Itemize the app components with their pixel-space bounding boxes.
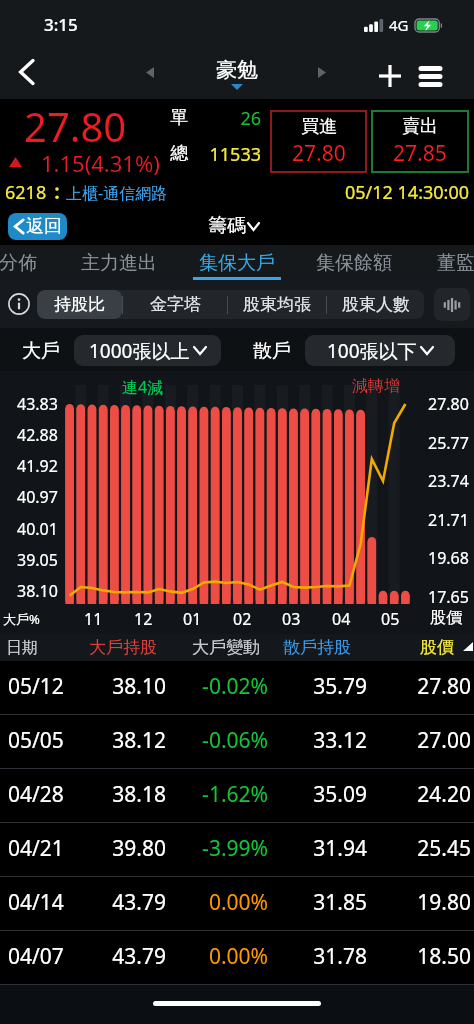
button[interactable]: Menu	[406, 52, 454, 100]
staticText: 27.80	[292, 139, 346, 168]
button[interactable]: Chart indicator	[434, 288, 470, 321]
staticText: 26	[185, 106, 261, 131]
staticText: 01	[183, 608, 202, 630]
button[interactable]: 04/14	[0, 877, 474, 931]
button[interactable]: 04/28	[0, 769, 474, 823]
staticText: 集保大戶	[199, 251, 275, 275]
staticText: 集保餘額	[316, 251, 392, 275]
staticText: 43.83	[17, 393, 58, 415]
button[interactable]: 04/07	[0, 931, 474, 985]
staticText: 03	[282, 608, 301, 630]
button[interactable]: 04/21	[0, 823, 474, 877]
staticText: 18.50	[401, 942, 471, 971]
staticText: 11533	[185, 142, 261, 167]
staticText: 返回	[26, 215, 62, 238]
button[interactable]: 集保大戶	[187, 245, 287, 280]
staticText: 05/12 14:30:00	[345, 180, 469, 205]
staticText: 賣出	[402, 115, 438, 138]
button[interactable]: 買進	[270, 110, 367, 173]
staticText: 股價	[430, 608, 462, 628]
staticText: 27.85	[393, 139, 447, 168]
staticText: 27.00	[401, 726, 471, 755]
staticText: 1000張以上	[89, 338, 190, 364]
staticText: 12	[134, 608, 153, 630]
staticText: -0.06%	[190, 726, 268, 755]
staticText: 100張以下	[327, 338, 417, 364]
staticText: 散戶持股	[283, 637, 351, 658]
button[interactable]: 05/12	[0, 661, 474, 715]
button[interactable]: 股東人數	[327, 290, 424, 319]
button[interactable]: 持股比	[37, 290, 122, 319]
staticText: 39.05	[17, 549, 58, 571]
staticText: 0.00%	[190, 888, 268, 917]
staticText: 05/12	[8, 672, 64, 701]
staticText: 24.20	[401, 780, 471, 809]
staticText: 大戶	[22, 339, 60, 363]
staticText: 02	[233, 608, 252, 630]
staticText: 6218	[5, 180, 47, 205]
staticText: -1.62%	[190, 780, 268, 809]
staticText: 25.77	[428, 432, 469, 454]
staticText: 40.97	[17, 486, 58, 508]
button[interactable]: 集保餘額	[304, 245, 404, 280]
staticText: 11	[84, 608, 103, 630]
staticText: 04/07	[8, 942, 64, 971]
staticText: 豪勉	[216, 57, 258, 83]
staticText: 日期	[6, 638, 38, 658]
staticText: 0.00%	[190, 942, 268, 971]
staticText: 19.68	[428, 547, 469, 569]
staticText: 04/21	[8, 834, 64, 863]
button[interactable]: Previous stock	[133, 55, 167, 89]
staticText: -3.99%	[190, 834, 268, 863]
staticText: 31.94	[300, 834, 367, 863]
button[interactable]: Next stock	[305, 55, 339, 89]
staticText: 減轉增	[352, 376, 400, 396]
staticText: 單	[170, 106, 188, 129]
staticText: 買進	[301, 115, 337, 138]
staticText: 17.65	[428, 586, 469, 608]
button[interactable]: Back	[0, 45, 54, 99]
button[interactable]: Info	[4, 289, 34, 319]
staticText: 21.71	[428, 509, 469, 531]
staticText: 04/14	[8, 888, 64, 917]
staticText: 股東人數	[342, 294, 410, 315]
staticText: 大戶%	[3, 610, 40, 628]
staticText: 43.79	[96, 888, 166, 917]
button[interactable]: 股東均張	[228, 290, 326, 319]
staticText: 31.85	[300, 888, 367, 917]
staticText: 27.80	[24, 99, 127, 153]
button[interactable]: 05/05	[0, 715, 474, 769]
button[interactable]: 100張以下	[305, 335, 455, 366]
staticText: 43.79	[96, 942, 166, 971]
staticText: 04	[332, 608, 351, 630]
staticText: 38.18	[96, 780, 166, 809]
staticText: 35.09	[300, 780, 367, 809]
staticText: -0.02%	[190, 672, 268, 701]
staticText: 40.01	[17, 518, 58, 540]
staticText: 38.10	[17, 580, 58, 602]
staticText: 大戶變動	[192, 637, 260, 658]
staticText: 33.12	[300, 726, 367, 755]
staticText: 股東均張	[243, 294, 311, 315]
staticText: 39.80	[96, 834, 166, 863]
staticText: 25.45	[401, 834, 471, 863]
staticText: 3:15	[44, 13, 78, 36]
staticText: 27.80	[401, 672, 471, 701]
staticText: 05	[381, 608, 400, 630]
button[interactable]: 金字塔	[123, 290, 227, 319]
button[interactable]: 賣出	[371, 110, 469, 173]
staticText: 23.74	[428, 470, 469, 492]
button[interactable]: 籌碼	[208, 214, 259, 238]
staticText: 股價	[420, 637, 454, 658]
button[interactable]: Add	[366, 52, 414, 100]
button[interactable]: 董監	[426, 245, 474, 280]
button[interactable]: 分佈	[0, 245, 48, 280]
staticText: 散戶	[253, 339, 291, 363]
staticText: 38.10	[96, 672, 166, 701]
button[interactable]: 返回	[8, 213, 67, 240]
staticText: 38.12	[96, 726, 166, 755]
button[interactable]: 主力進出	[69, 245, 169, 280]
staticText: 19.80	[401, 888, 471, 917]
staticText: 04/28	[8, 780, 64, 809]
button[interactable]: 1000張以上	[74, 335, 221, 366]
